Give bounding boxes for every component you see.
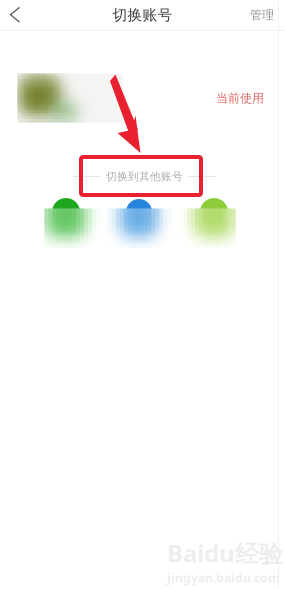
- staticText: Baidu经验: [167, 537, 283, 569]
- staticText: jingyan.baidu.com: [167, 570, 280, 586]
- staticText: 切换到其他账号: [106, 170, 183, 183]
- staticText: 切换账号: [112, 6, 172, 24]
- button[interactable]: 返回: [0, 0, 30, 30]
- staticText: 管理: [250, 8, 274, 22]
- staticText: 当前使用: [216, 91, 264, 106]
- button[interactable]: 管理: [239, 0, 285, 30]
